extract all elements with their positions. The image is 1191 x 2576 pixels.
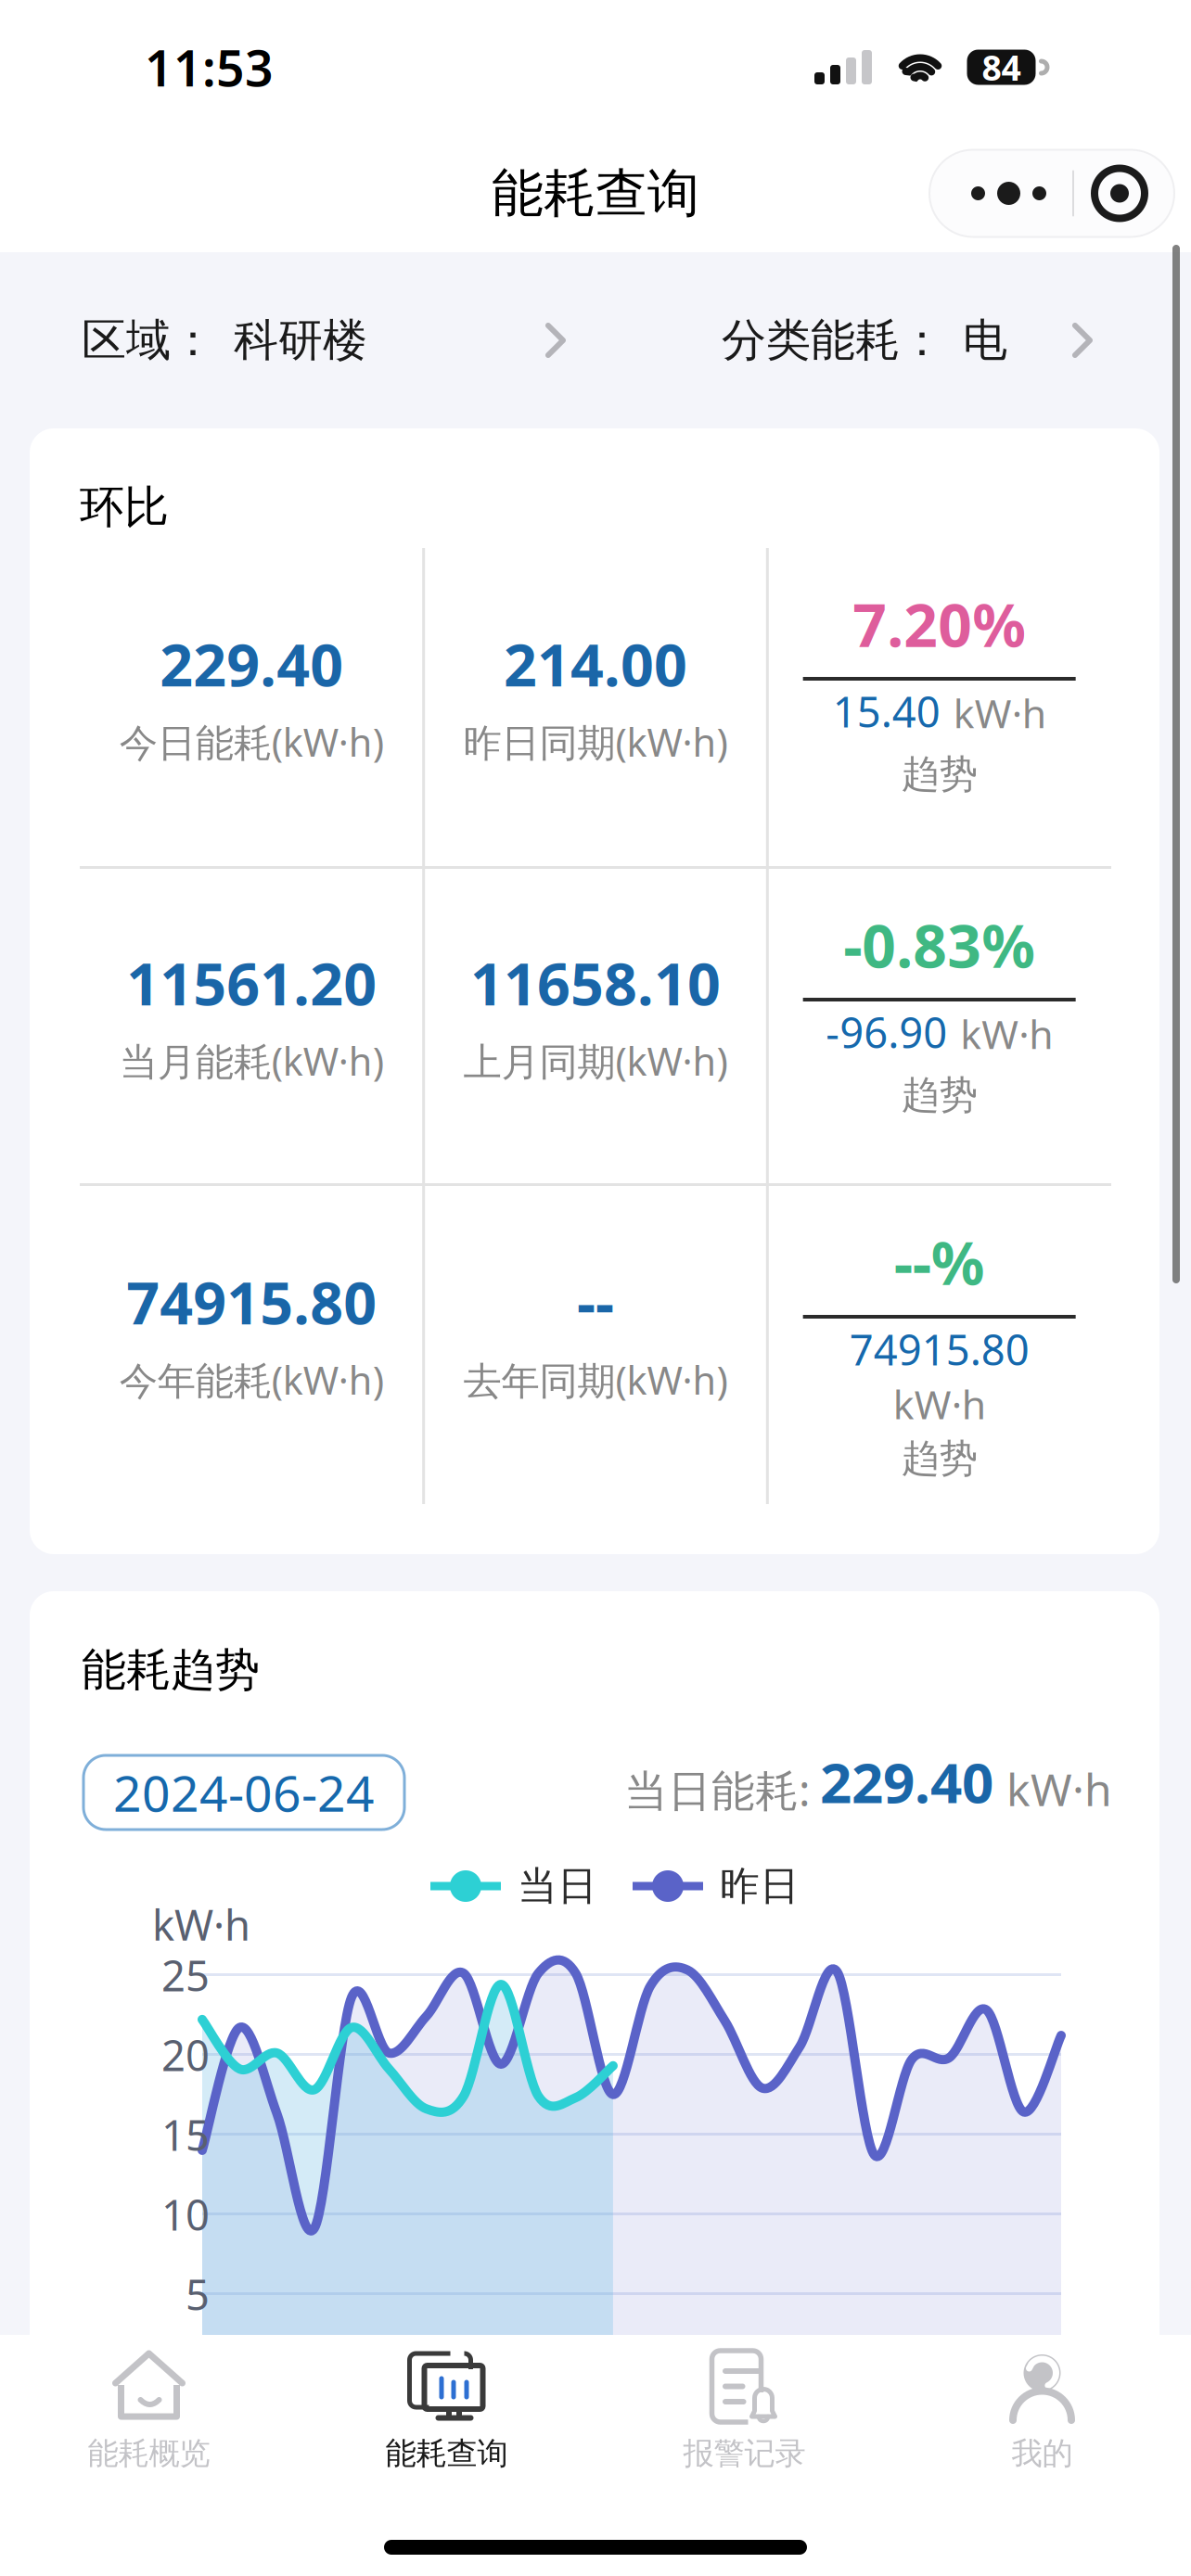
button[interactable]: 分类能耗： — [722, 288, 1102, 392]
staticText: 214.00 — [504, 625, 687, 703]
staticText: 5 — [186, 2266, 210, 2322]
staticText: kW·h — [893, 1378, 986, 1430]
staticText: 229.40 — [820, 1745, 993, 1818]
staticText: 趋势 — [901, 1435, 977, 1482]
staticText: 能耗查询 — [492, 161, 699, 225]
staticText: 趋势 — [901, 751, 977, 798]
staticText: 11561.20 — [126, 944, 377, 1021]
staticText: 今年能耗(kW·h) — [119, 1354, 384, 1405]
staticText: 当日 — [518, 1862, 597, 1910]
staticText: 报警记录 — [683, 2435, 806, 2473]
staticText: 74915.80 — [126, 1263, 377, 1340]
staticText: 趋势 — [901, 1072, 977, 1119]
staticText: 电 — [963, 313, 1007, 368]
staticText: 2024-06-24 — [113, 1760, 375, 1825]
button[interactable]: 我的 — [893, 2335, 1191, 2506]
staticText: kW·h — [960, 1007, 1053, 1060]
staticText: 25 — [161, 1947, 210, 2003]
staticText: 分类能耗： — [722, 313, 944, 368]
staticText: 15.40 — [833, 683, 940, 739]
button[interactable]: 2024-06-24 — [83, 1755, 404, 1830]
staticText: 能耗趋势 — [82, 1643, 260, 1697]
staticText: 15 — [161, 2107, 210, 2163]
staticText: -96.90 — [826, 1004, 947, 1060]
button[interactable]: 报警记录 — [595, 2335, 893, 2506]
staticText: 上月同期(kW·h) — [463, 1035, 728, 1086]
staticText: 环比 — [80, 480, 169, 535]
staticText: 当日能耗: — [624, 1761, 811, 1818]
staticText: 能耗概览 — [88, 2435, 210, 2473]
staticText: 区域： — [82, 313, 215, 368]
staticText: 今日能耗(kW·h) — [119, 716, 384, 767]
staticText: 昨日 — [720, 1862, 800, 1910]
button[interactable]: 区域： — [82, 288, 575, 392]
staticText: kW·h — [1006, 1759, 1112, 1818]
staticText: kW·h — [152, 1896, 250, 1952]
staticText: 我的 — [1012, 2435, 1073, 2473]
staticText: 229.40 — [160, 625, 343, 703]
staticText: 20 — [161, 2027, 210, 2083]
staticText: 7.20% — [853, 585, 1026, 663]
staticText: kW·h — [953, 687, 1046, 739]
staticText: --% — [894, 1223, 985, 1301]
staticText: -0.83% — [843, 905, 1035, 984]
staticText: 当月能耗(kW·h) — [119, 1035, 384, 1086]
button[interactable]: 更多 — [929, 150, 1174, 237]
staticText: 科研楼 — [234, 313, 367, 368]
staticText: 74915.80 — [849, 1321, 1029, 1377]
staticText: 去年同期(kW·h) — [463, 1354, 728, 1405]
button[interactable]: 能耗查询 — [298, 2335, 595, 2506]
staticText: -- — [577, 1263, 614, 1340]
staticText: 能耗查询 — [385, 2435, 508, 2473]
staticText: 84 — [982, 44, 1021, 90]
button[interactable]: 能耗概览 — [0, 2335, 298, 2506]
staticText: 10 — [161, 2186, 210, 2242]
staticText: 11658.10 — [470, 944, 721, 1021]
staticText: 11:53 — [145, 34, 274, 100]
staticText: 昨日同期(kW·h) — [463, 716, 728, 767]
